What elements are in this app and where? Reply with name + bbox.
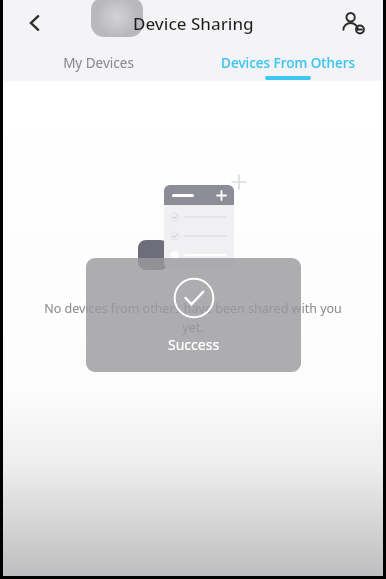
button[interactable]: Manage shared users [333, 3, 373, 43]
staticText: Device Sharing [133, 12, 254, 35]
button[interactable]: Devices From Others [193, 46, 383, 80]
staticText: My Devices [63, 54, 134, 72]
staticText: Devices From Others [221, 54, 355, 72]
button[interactable]: Back [15, 3, 55, 43]
button[interactable]: My Devices [3, 46, 193, 80]
staticText: No devices from others have been shared … [37, 300, 349, 336]
staticText: Success [168, 335, 220, 354]
